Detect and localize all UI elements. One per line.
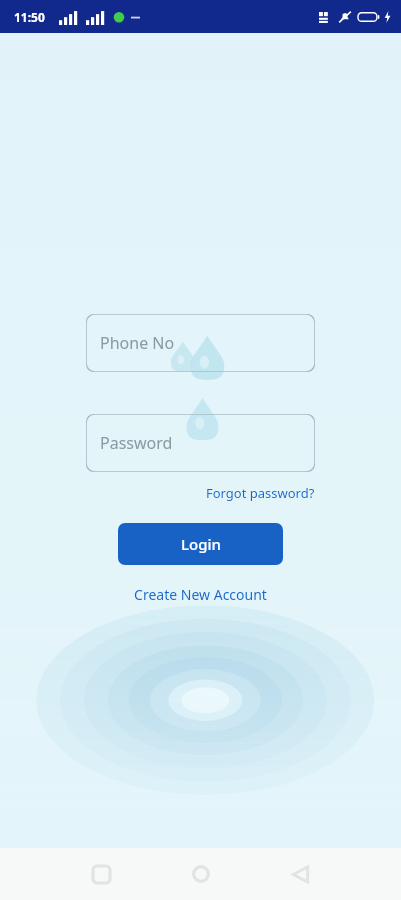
button[interactable]: Recent apps	[78, 851, 124, 897]
button[interactable]: Password	[86, 414, 315, 472]
button[interactable]: Create New Account	[128, 582, 273, 607]
staticText: Phone No	[100, 332, 175, 354]
staticText: Password	[100, 432, 173, 454]
staticText: Login	[181, 534, 221, 554]
staticText: 11:50	[14, 9, 45, 25]
button[interactable]: Login	[118, 523, 283, 565]
button[interactable]: Phone No	[86, 314, 315, 372]
button[interactable]: Forgot password?	[206, 482, 315, 504]
button[interactable]: Back	[277, 851, 323, 897]
button[interactable]: Home	[178, 851, 224, 897]
